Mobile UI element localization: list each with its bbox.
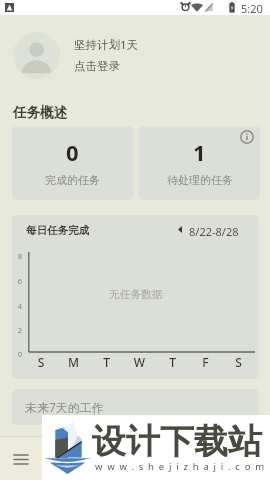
button[interactable]: Menu	[7, 445, 35, 473]
staticText: 待处理的任务	[167, 173, 233, 187]
staticText: 任务概述	[13, 104, 67, 121]
button[interactable]: Previous week	[173, 221, 187, 237]
staticText: S	[25, 354, 57, 370]
staticText: 1	[193, 137, 206, 167]
staticText: 5:20	[241, 1, 263, 16]
staticText: S	[222, 354, 255, 370]
staticText: W	[123, 354, 156, 370]
staticText: 0	[12, 349, 22, 359]
staticText: 无任务数据	[109, 288, 163, 301]
staticText: 4	[12, 301, 22, 311]
button[interactable]: 未来7天的工作	[12, 389, 259, 425]
staticText: 设计下载站	[92, 420, 262, 463]
staticText: 2	[12, 325, 22, 335]
staticText: 点击登录	[74, 59, 120, 73]
button[interactable]: Info	[236, 126, 257, 147]
button[interactable]: 坚持计划1天	[0, 17, 270, 94]
staticText: T	[156, 354, 189, 370]
button[interactable]: 1	[139, 126, 260, 200]
staticText: M	[57, 354, 90, 370]
staticText: 坚持计划1天	[74, 37, 139, 53]
staticText: 8/22-8/28	[189, 224, 239, 239]
button[interactable]: 0	[12, 126, 133, 200]
staticText: T	[90, 354, 123, 370]
staticText: F	[189, 354, 222, 370]
staticText: 8	[12, 251, 22, 261]
staticText: 6	[12, 276, 22, 286]
staticText: 未来7天的工作	[25, 399, 104, 415]
staticText: 每日任务完成	[26, 224, 89, 237]
staticText: 完成的任务	[45, 173, 100, 187]
staticText: 0	[66, 137, 79, 167]
staticText: www.shejizhaji.com	[95, 460, 269, 473]
